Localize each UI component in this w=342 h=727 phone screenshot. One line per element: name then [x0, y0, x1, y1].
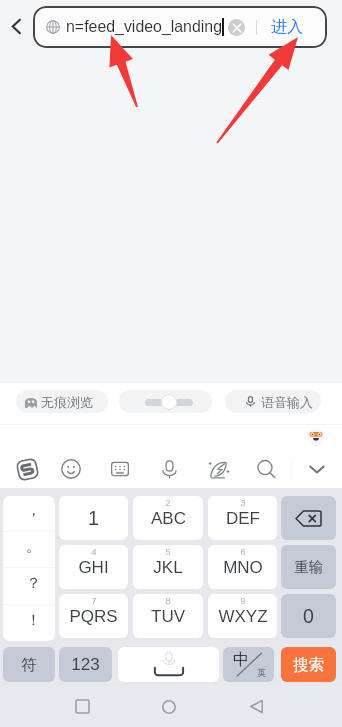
staticText: n=feed_video_landing	[66, 18, 222, 36]
button[interactable]: 符	[3, 647, 55, 682]
button[interactable]: ？	[3, 568, 55, 604]
button[interactable]: 搜索	[281, 647, 336, 682]
staticText: PQRS	[69, 607, 118, 626]
staticText: ，	[26, 501, 41, 520]
button[interactable]: Voice input	[147, 447, 191, 491]
button[interactable]: Assistant	[307, 428, 325, 446]
staticText: ？	[26, 574, 41, 593]
button[interactable]: Clear text	[228, 19, 245, 36]
button[interactable]: Backspace	[281, 496, 336, 540]
staticText: 无痕浏览	[41, 394, 93, 410]
button[interactable]: Back	[3, 13, 29, 39]
button[interactable]: Recent apps	[58, 686, 106, 727]
staticText: MNO	[223, 558, 263, 577]
staticText: ！	[26, 611, 41, 630]
button[interactable]: 4	[59, 545, 128, 589]
staticText: 4	[91, 547, 97, 557]
staticText: ABC	[151, 509, 186, 528]
button[interactable]: Keyboard height toggle	[119, 390, 212, 413]
staticText: 0	[303, 605, 314, 627]
staticText: TUV	[151, 607, 185, 626]
button[interactable]: 语音输入	[225, 390, 321, 413]
button[interactable]: 5	[133, 545, 203, 589]
button[interactable]: Handwriting	[196, 447, 240, 491]
staticText: 123	[71, 655, 100, 674]
staticText: WXYZ	[218, 607, 268, 626]
button[interactable]: 9	[208, 594, 277, 638]
button[interactable]: 3	[208, 496, 277, 540]
staticText: 中	[233, 650, 249, 670]
staticText: 搜索	[293, 655, 324, 675]
button[interactable]: 123	[59, 647, 112, 682]
button[interactable]: Emoji	[49, 447, 93, 491]
button[interactable]: 1	[59, 496, 128, 540]
button[interactable]: Home	[145, 686, 193, 727]
staticText: 8	[165, 596, 171, 606]
staticText: 2	[165, 498, 171, 508]
button[interactable]: Search	[244, 447, 288, 491]
staticText: 符	[21, 655, 37, 675]
staticText: 重输	[294, 558, 323, 576]
button[interactable]: Back	[232, 686, 280, 727]
staticText: GHI	[78, 558, 109, 577]
staticText: DEF	[226, 509, 260, 528]
button[interactable]: Hide keyboard	[295, 447, 339, 491]
button[interactable]: Chinese English switch	[223, 647, 274, 682]
staticText: JKL	[153, 558, 183, 577]
staticText: 6	[240, 547, 246, 557]
button[interactable]: 。	[3, 532, 55, 567]
button[interactable]: Space	[118, 647, 219, 682]
button[interactable]: 进入	[271, 17, 303, 37]
button[interactable]: ！	[3, 605, 55, 641]
button[interactable]: 2	[133, 496, 203, 540]
staticText: 英	[257, 667, 266, 678]
button[interactable]: 0	[281, 594, 336, 638]
staticText: 7	[91, 596, 97, 606]
button[interactable]: Sogou keyboard	[5, 447, 49, 491]
staticText: 。	[26, 537, 41, 556]
button[interactable]: ，	[3, 496, 55, 531]
staticText: 9	[240, 596, 246, 606]
staticText: 3	[240, 498, 246, 508]
staticText: 1	[88, 507, 99, 529]
button[interactable]: 无痕浏览	[16, 390, 108, 413]
button[interactable]: Keyboard layout	[98, 447, 142, 491]
button[interactable]: 重输	[281, 545, 336, 589]
staticText: 进入	[271, 17, 303, 37]
button[interactable]: 8	[133, 594, 203, 638]
staticText: 语音输入	[261, 394, 313, 410]
button[interactable]: 6	[208, 545, 277, 589]
staticText: 5	[165, 547, 171, 557]
button[interactable]: 7	[59, 594, 128, 638]
